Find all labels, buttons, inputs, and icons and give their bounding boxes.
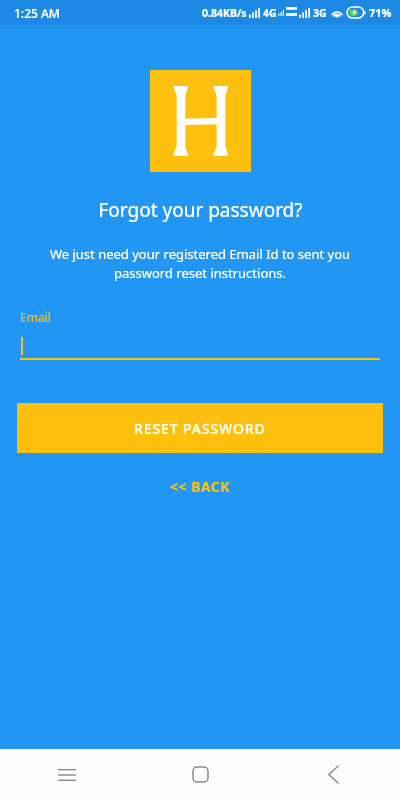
button[interactable]: Home [134, 749, 267, 800]
staticText: << BACK [170, 477, 231, 496]
button[interactable]: << BACK [170, 477, 231, 496]
button[interactable]: RESET PASSWORD [17, 403, 383, 453]
button[interactable] [20, 334, 380, 358]
staticText: 1:25 AM [14, 5, 60, 21]
staticText: 0.84KB/s [202, 6, 247, 20]
staticText: 71% [369, 5, 392, 20]
staticText: 3G [313, 6, 327, 20]
button[interactable]: Back [267, 749, 400, 800]
staticText: Forgot your password? [98, 197, 303, 223]
staticText: We just need your registered Email Id to… [24, 245, 376, 282]
staticText: RESET PASSWORD [134, 419, 266, 438]
staticText: 4G [263, 6, 277, 20]
button[interactable]: Recent apps [0, 749, 134, 800]
staticText: Email [20, 309, 51, 325]
